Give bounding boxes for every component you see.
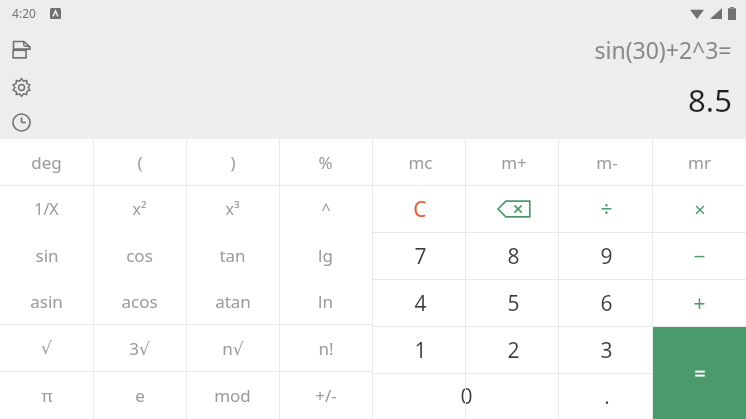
staticText: ÷ <box>600 195 613 224</box>
button[interactable]: sin <box>0 232 93 278</box>
button[interactable]: m- <box>560 139 653 185</box>
staticText: tan <box>219 244 246 267</box>
staticText: × <box>694 196 706 223</box>
staticText: mc <box>408 151 433 174</box>
button[interactable]: × <box>653 186 746 232</box>
button[interactable]: deg <box>0 139 93 185</box>
button[interactable]: ÷ <box>560 186 653 232</box>
button[interactable]: C <box>373 186 467 232</box>
staticText: + <box>693 289 706 318</box>
staticText: 0 <box>460 382 473 411</box>
button[interactable]: n√ <box>186 325 279 371</box>
button[interactable]: 4 <box>373 280 467 326</box>
button[interactable]: Backspace <box>467 186 560 232</box>
staticText: 8 <box>507 242 520 271</box>
button[interactable]: 2 <box>467 327 560 373</box>
staticText: 5 <box>507 289 520 318</box>
button[interactable]: 7 <box>373 233 467 279</box>
staticText: π <box>41 384 53 407</box>
staticText: mod <box>214 384 251 407</box>
staticText: x³ <box>225 198 240 220</box>
button[interactable]: mc <box>373 139 467 185</box>
button[interactable]: ^ <box>279 186 372 232</box>
staticText: % <box>318 151 333 174</box>
staticText: ) <box>230 151 236 174</box>
staticText: x² <box>132 198 147 220</box>
staticText: lg <box>318 244 333 267</box>
staticText: m- <box>596 151 618 174</box>
button[interactable]: 9 <box>560 233 653 279</box>
staticText: 7 <box>414 242 427 271</box>
button[interactable]: tan <box>186 232 279 278</box>
staticText: n! <box>318 337 334 360</box>
button[interactable]: x² <box>93 186 186 232</box>
button[interactable]: √ <box>0 325 93 371</box>
button[interactable]: + <box>653 280 746 326</box>
staticText: − <box>693 242 706 271</box>
staticText: 9 <box>600 242 613 271</box>
staticText: C <box>413 195 427 224</box>
button[interactable]: History <box>5 106 37 139</box>
button[interactable]: acos <box>93 278 186 324</box>
button[interactable]: mod <box>186 372 279 418</box>
button[interactable]: ln <box>279 278 372 324</box>
button[interactable]: x³ <box>186 186 279 232</box>
staticText: . <box>604 383 610 410</box>
button[interactable]: +/- <box>279 372 372 418</box>
staticText: mr <box>688 151 711 174</box>
staticText: 2 <box>507 336 520 365</box>
staticText: atan <box>215 290 251 313</box>
button[interactable]: 1 <box>373 327 467 373</box>
staticText: deg <box>31 151 62 174</box>
staticText: sin <box>35 244 59 267</box>
button[interactable]: − <box>653 233 746 279</box>
staticText: 3 <box>600 336 613 365</box>
button[interactable]: . <box>560 374 653 419</box>
staticText: 6 <box>600 289 613 318</box>
button[interactable]: π <box>0 372 93 418</box>
staticText: 4 <box>414 289 427 318</box>
button[interactable]: asin <box>0 278 93 324</box>
staticText: 3√ <box>129 337 150 360</box>
staticText: 1/X <box>34 198 59 220</box>
button[interactable]: cos <box>93 232 186 278</box>
staticText: cos <box>126 244 153 267</box>
button[interactable]: m+ <box>467 139 560 185</box>
button[interactable]: e <box>93 372 186 418</box>
button[interactable]: 1/X <box>0 186 93 232</box>
staticText: e <box>135 384 145 407</box>
button[interactable]: Settings <box>5 68 37 106</box>
staticText: 8.5 <box>688 79 732 121</box>
staticText: ln <box>318 290 333 313</box>
button[interactable]: ) <box>186 139 279 185</box>
staticText: ^ <box>321 198 331 220</box>
button[interactable]: 6 <box>560 280 653 326</box>
staticText: ( <box>137 151 143 174</box>
staticText: = <box>694 360 706 387</box>
staticText: √ <box>41 338 52 358</box>
button[interactable]: lg <box>279 232 372 278</box>
staticText: asin <box>30 290 63 313</box>
button[interactable]: ( <box>93 139 186 185</box>
button[interactable]: n! <box>279 325 372 371</box>
button[interactable]: mr <box>653 139 746 185</box>
button[interactable]: = <box>653 327 746 419</box>
staticText: n√ <box>222 337 244 360</box>
staticText: acos <box>121 290 158 313</box>
staticText: m+ <box>501 151 527 174</box>
button[interactable]: Copy <box>5 30 37 68</box>
button[interactable]: 8 <box>467 233 560 279</box>
button[interactable]: atan <box>186 278 279 324</box>
button[interactable]: 0 <box>373 374 560 419</box>
staticText: 1 <box>414 336 427 365</box>
button[interactable]: 3 <box>560 327 653 373</box>
staticText: +/- <box>315 384 337 407</box>
button[interactable]: 3√ <box>93 325 186 371</box>
staticText: sin(30)+2^3= <box>594 34 732 65</box>
button[interactable]: 5 <box>467 280 560 326</box>
button[interactable]: % <box>279 139 372 185</box>
staticText: 4:20 <box>12 5 36 21</box>
